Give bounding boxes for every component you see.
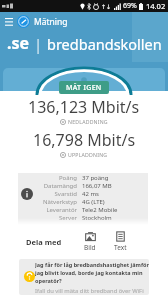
- staticText: Tele2 Mobile: [82, 206, 118, 214]
- staticText: Bild: [84, 243, 96, 252]
- staticText: Stockholm: [82, 214, 112, 222]
- button[interactable]: MÄT IGEN: [59, 81, 109, 94]
- staticText: Text: [114, 243, 127, 252]
- staticText: UPPLADDNING: [68, 151, 108, 158]
- staticText: Server: [58, 214, 77, 222]
- staticText: Dela med: [26, 237, 62, 247]
- staticText: 16,798 Mbit/s: [33, 129, 136, 151]
- staticText: 42 ms: [82, 190, 99, 198]
- staticText: Ifall du vill mäta ditt bredband över Wi…: [35, 287, 149, 295]
- staticText: |: [34, 34, 43, 54]
- staticText: NEDLADDNING: [68, 118, 108, 125]
- staticText: 136,123 Mbit/s: [28, 96, 140, 118]
- button[interactable]: Text: [112, 230, 129, 253]
- staticText: bredbandskollen: [47, 34, 162, 54]
- button[interactable]: Menu: [2, 15, 16, 29]
- staticText: MÄT IGEN: [66, 83, 102, 93]
- staticText: Mätning: [34, 16, 68, 28]
- staticText: Jag får för låg bredbandshastighet jämfö…: [35, 261, 149, 285]
- button[interactable]: Jag får för låg bredbandshastighet jämfö…: [19, 259, 149, 295]
- staticText: .se: [7, 32, 30, 54]
- button[interactable]: Bild: [82, 230, 98, 253]
- staticText: 14.02: [146, 1, 166, 11]
- staticText: 69%: [123, 1, 137, 11]
- button[interactable]: Information: [21, 188, 33, 200]
- staticText: Datamängd: [43, 182, 77, 190]
- staticText: 37 poäng: [82, 174, 109, 182]
- staticText: 166,07 MB: [82, 182, 112, 190]
- staticText: Poäng: [58, 174, 77, 182]
- staticText: Nätverkstyp: [43, 198, 77, 206]
- staticText: ↑↓: [101, 3, 112, 10]
- staticText: Svarstid: [54, 190, 77, 198]
- staticText: Leverantör: [46, 206, 77, 214]
- staticText: 4G (LTE): [82, 198, 105, 206]
